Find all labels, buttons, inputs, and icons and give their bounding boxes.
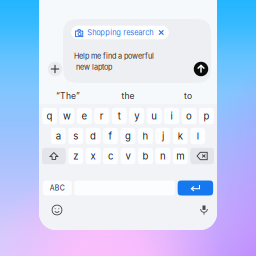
button[interactable]: s <box>68 128 83 144</box>
staticText: o <box>186 110 192 122</box>
button[interactable]: n <box>155 148 170 164</box>
button[interactable]: q <box>42 108 57 124</box>
staticText: w <box>63 110 71 122</box>
button[interactable]: y <box>129 108 144 124</box>
staticText: t <box>118 110 121 122</box>
staticText: to <box>184 91 192 101</box>
staticText: Help me find a powerful <box>74 52 154 60</box>
staticText: e <box>81 110 87 122</box>
button[interactable]: a <box>51 128 66 144</box>
staticText: l <box>197 130 199 142</box>
button[interactable]: the <box>98 88 157 104</box>
button[interactable]: w <box>59 108 74 124</box>
staticText: i <box>171 110 173 122</box>
button[interactable]: o <box>181 108 196 124</box>
button[interactable]: j <box>155 128 170 144</box>
staticText: z <box>73 150 78 162</box>
button[interactable]: Send <box>193 61 209 77</box>
staticText: k <box>178 130 183 142</box>
staticText: m <box>176 150 184 162</box>
staticText: n <box>160 150 166 162</box>
button[interactable]: g <box>120 128 135 144</box>
button[interactable]: z <box>68 148 83 164</box>
button[interactable]: u <box>147 108 162 124</box>
button[interactable]: Add attachment <box>45 59 65 79</box>
button[interactable]: k <box>173 128 188 144</box>
button[interactable]: Shopping research <box>71 26 169 39</box>
staticText: b <box>142 150 148 162</box>
button[interactable]: “The” <box>38 88 97 104</box>
button[interactable]: m <box>173 148 188 164</box>
button[interactable]: i <box>164 108 179 124</box>
button[interactable]: Delete <box>190 148 214 164</box>
staticText: q <box>46 110 52 122</box>
staticText: ABC <box>50 184 65 192</box>
button[interactable]: e <box>77 108 92 124</box>
button[interactable]: c <box>103 148 118 164</box>
staticText: p <box>203 110 209 122</box>
button[interactable]: x <box>86 148 101 164</box>
button[interactable]: h <box>138 128 153 144</box>
button[interactable]: d <box>86 128 101 144</box>
button[interactable]: t <box>112 108 127 124</box>
button[interactable]: Return <box>178 180 213 195</box>
button[interactable]: b <box>138 148 153 164</box>
staticText: a <box>56 130 61 142</box>
button[interactable]: Dictation <box>195 202 213 218</box>
button[interactable]: Emoji <box>48 202 66 218</box>
staticText: the <box>121 91 134 101</box>
staticText: c <box>108 150 113 162</box>
staticText: g <box>125 130 131 142</box>
staticText: new laptop <box>76 63 112 71</box>
staticText: x <box>91 150 96 162</box>
button[interactable]: l <box>190 128 205 144</box>
staticText: d <box>90 130 96 142</box>
button[interactable]: to <box>158 88 217 104</box>
staticText: “The” <box>56 91 80 101</box>
staticText: v <box>125 150 130 162</box>
staticText: u <box>151 110 157 122</box>
staticText: h <box>142 130 148 142</box>
button[interactable]: r <box>94 108 109 124</box>
staticText: j <box>162 130 164 142</box>
staticText: r <box>100 110 104 122</box>
staticText: Shopping research <box>87 28 153 37</box>
button[interactable]: f <box>103 128 118 144</box>
staticText: f <box>109 130 113 142</box>
button[interactable]: p <box>199 108 214 124</box>
button[interactable]: ABC <box>43 180 72 195</box>
staticText: s <box>73 130 78 142</box>
button[interactable]: Shift <box>42 148 66 164</box>
button[interactable]: v <box>120 148 135 164</box>
staticText: y <box>134 110 139 122</box>
